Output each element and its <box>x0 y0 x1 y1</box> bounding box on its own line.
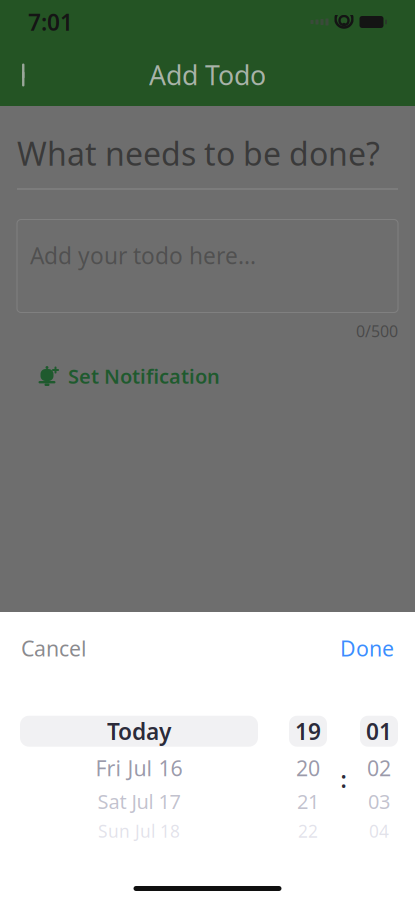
staticText: 0/500 <box>356 320 398 342</box>
staticText: 22 <box>298 820 318 843</box>
staticText: 21 <box>297 788 319 815</box>
staticText: 02 <box>367 754 391 782</box>
button[interactable]: Set Notification <box>24 355 231 397</box>
staticText: Add Todo <box>149 57 266 93</box>
staticText: : <box>340 764 346 794</box>
staticText: Today <box>107 716 171 746</box>
staticText: Sun Jul 18 <box>98 820 180 843</box>
staticText: What needs to be done? <box>17 132 380 174</box>
staticText: Set Notification <box>68 363 220 389</box>
staticText: Cancel <box>21 634 87 662</box>
staticText: Done <box>340 634 394 662</box>
staticText: Fri Jul 16 <box>95 754 182 782</box>
button[interactable]: Back <box>4 53 48 97</box>
staticText: Add your todo here... <box>30 240 256 271</box>
staticText: 20 <box>296 754 320 782</box>
button[interactable]: Done <box>336 624 398 672</box>
button[interactable]: Cancel <box>17 624 91 672</box>
staticText: 03 <box>368 788 390 815</box>
staticText: 7:01 <box>28 7 73 37</box>
staticText: 04 <box>369 820 389 843</box>
staticText: 19 <box>295 716 321 746</box>
staticText: Sat Jul 17 <box>97 788 180 815</box>
staticText: 01 <box>366 716 392 746</box>
